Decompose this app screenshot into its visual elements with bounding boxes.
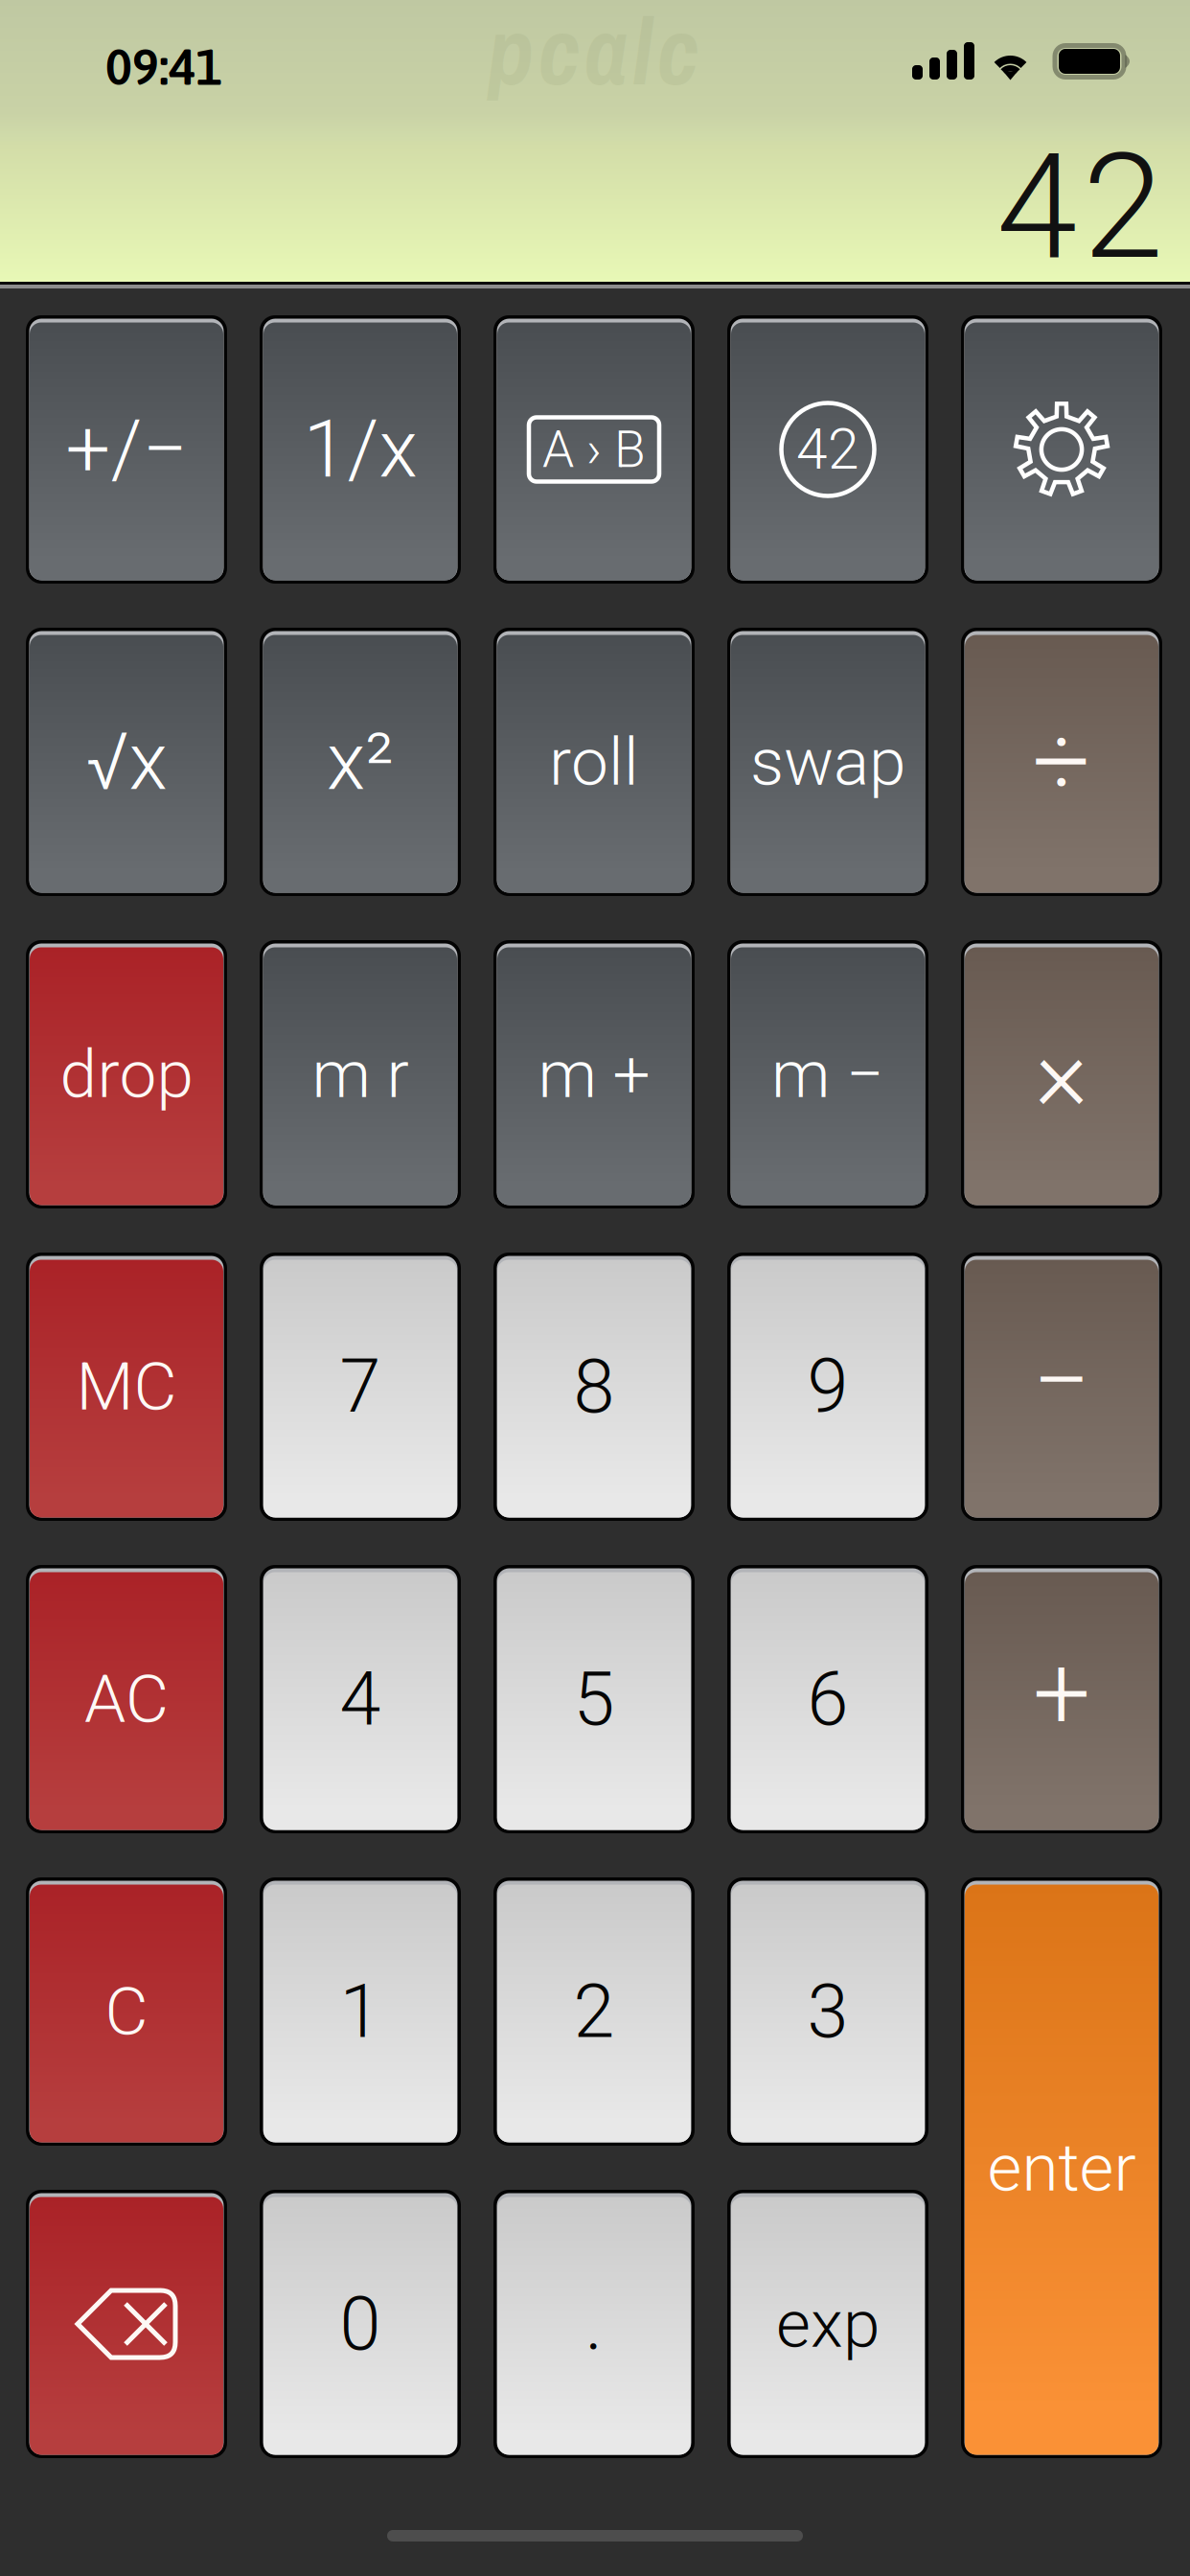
staticText: + [1033,1633,1090,1753]
staticText: 7 [340,1343,381,1430]
staticText: m − [771,1035,884,1113]
button[interactable] [26,1253,227,1521]
staticText: +/− [66,403,187,496]
staticText: exp [776,2285,880,2363]
button[interactable] [961,1877,1162,2458]
staticText: × [1035,1014,1088,1134]
button[interactable]: Settings [961,315,1162,584]
staticText: drop [60,1035,193,1113]
staticText: swap [750,723,905,801]
staticText: 6 [807,1656,848,1743]
button[interactable] [727,628,928,896]
button[interactable]: One over x [260,315,461,584]
button[interactable]: x squared [260,628,461,896]
button[interactable] [260,1877,461,2146]
button[interactable]: Constants [727,315,928,584]
staticText: 09:41 [105,38,222,95]
staticText: C [105,1973,148,2050]
button[interactable]: Plus minus [26,315,227,584]
staticText: x² [327,715,394,808]
staticText: MC [76,1348,177,1426]
button[interactable] [727,940,928,1208]
staticText: pcalc [487,0,699,114]
button[interactable] [493,1877,695,2146]
button[interactable]: Plus [961,1565,1162,1833]
button[interactable] [493,940,695,1208]
button[interactable] [727,1877,928,2146]
staticText: 1 [340,1968,381,2055]
button[interactable] [26,940,227,1208]
staticText: 2 [573,1968,615,2055]
staticText: roll [549,723,639,801]
staticText: 0 [340,2281,381,2367]
staticText: 5 [573,1656,615,1743]
button[interactable] [727,1253,928,1521]
button[interactable] [493,1253,695,1521]
button[interactable]: Multiply [961,940,1162,1208]
staticText: 1/x [303,403,417,496]
button[interactable] [260,1253,461,1521]
button[interactable]: Square root [26,628,227,896]
staticText: AC [84,1660,169,1738]
staticText: 3 [807,1968,848,2055]
button[interactable]: Delete [26,2190,227,2458]
staticText: 4 [340,1656,381,1743]
staticText: ÷ [1032,702,1091,822]
staticText: − [1032,1321,1091,1441]
staticText: enter [987,2129,1136,2207]
button[interactable] [260,940,461,1208]
staticText: A › B [542,420,646,479]
staticText: √x [86,715,167,808]
button[interactable] [26,1877,227,2146]
staticText: 42 [796,416,859,482]
staticText: 42 [996,122,1163,292]
staticText: 8 [573,1343,615,1430]
staticText: m r [312,1035,409,1113]
button[interactable] [727,1565,928,1833]
button[interactable] [493,628,695,896]
staticText: 9 [807,1343,848,1430]
staticText: . [585,2281,603,2367]
button[interactable] [260,2190,461,2458]
staticText: m + [538,1035,650,1113]
button[interactable]: Decimal point [493,2190,695,2458]
button[interactable]: Divide [961,628,1162,896]
button[interactable] [26,1565,227,1833]
button[interactable] [493,1565,695,1833]
button[interactable] [260,1565,461,1833]
button[interactable]: A to B converter [493,315,695,584]
button[interactable] [727,2190,928,2458]
button[interactable]: Minus [961,1253,1162,1521]
